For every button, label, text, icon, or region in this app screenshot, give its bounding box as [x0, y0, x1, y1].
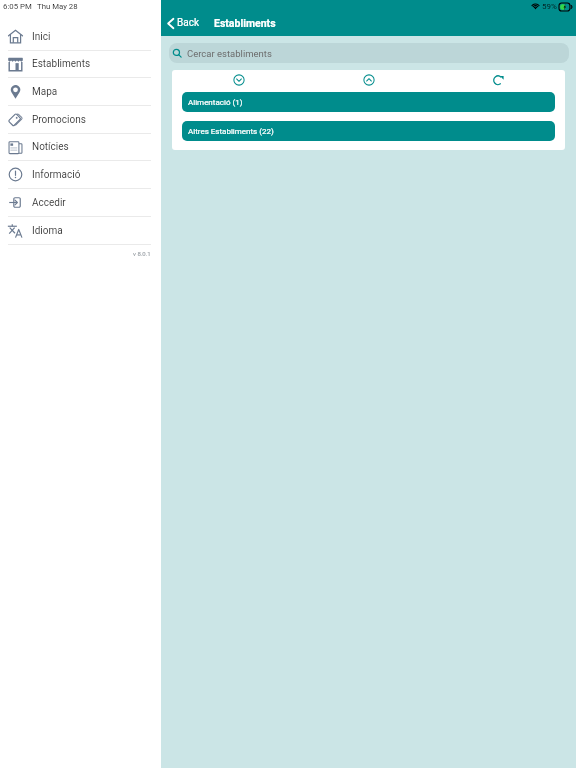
- button[interactable]: Back: [161, 17, 201, 29]
- staticText: Thu May 28: [37, 2, 78, 11]
- staticText: Establiments: [214, 17, 276, 29]
- button[interactable]: Alimentació (1): [182, 92, 555, 112]
- button[interactable]: Notícies: [0, 134, 161, 161]
- button[interactable]: Altres Establiments (22): [182, 121, 555, 141]
- button[interactable]: Promocions: [0, 106, 161, 134]
- staticText: Inici: [32, 31, 51, 43]
- staticText: v 8.0.1: [133, 250, 151, 257]
- staticText: Promocions: [32, 114, 86, 126]
- button[interactable]: Cercar establiments: [169, 43, 569, 63]
- staticText: Back: [177, 17, 199, 29]
- button[interactable]: Expand all: [174, 70, 304, 90]
- staticText: Alimentació (1): [188, 98, 243, 107]
- staticText: Cercar establiments: [187, 48, 272, 59]
- button[interactable]: Refresh: [434, 70, 564, 90]
- button[interactable]: Collapse all: [304, 70, 434, 90]
- staticText: Mapa: [32, 86, 58, 98]
- staticText: 6:05 PM: [3, 2, 32, 11]
- button[interactable]: Idioma: [0, 217, 161, 245]
- staticText: Altres Establiments (22): [188, 127, 274, 136]
- staticText: Idioma: [32, 225, 63, 237]
- button[interactable]: Informació: [0, 161, 161, 189]
- button[interactable]: Inici: [0, 23, 161, 51]
- staticText: Establiments: [32, 58, 91, 70]
- button[interactable]: Establiments: [0, 51, 161, 78]
- button[interactable]: Mapa: [0, 78, 161, 106]
- staticText: Informació: [32, 169, 81, 181]
- button[interactable]: Accedir: [0, 189, 161, 217]
- staticText: Notícies: [32, 141, 69, 153]
- staticText: Accedir: [32, 197, 66, 209]
- staticText: 59%: [542, 2, 557, 11]
